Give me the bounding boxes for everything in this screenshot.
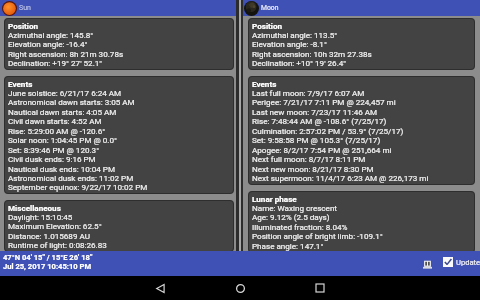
staticText: Azimuthal angle: 145.8° [8, 30, 94, 39]
staticText: Set: 8:39:46 PM @ 120.3° [8, 145, 100, 154]
staticText: Position [8, 21, 39, 30]
staticText: Astronomical dusk ends: 11:02 PM [8, 173, 134, 182]
staticText: Position angle of bright limb: -109.1° [252, 231, 383, 240]
button[interactable]: Miscellaneous [4, 200, 234, 251]
button[interactable]: Update [443, 257, 480, 267]
staticText: Last new moon: 7/23/17 11:46 AM [252, 107, 378, 116]
staticText: Last full moon: 7/9/17 6:07 AM [252, 88, 365, 97]
staticText: Lunar phase [252, 194, 297, 203]
staticText: Next supermoon: 11/4/17 6:23 AM @ 226,17… [252, 173, 429, 182]
button[interactable]: Events [4, 76, 234, 194]
staticText: Illuminated fraction: 8.04% [252, 222, 348, 231]
staticText: Declination: +10° 19' 26.4" [252, 58, 346, 67]
staticText: Set: 9:58:58 PM @ 105.3° (7/25/17) [252, 135, 381, 144]
staticText: Right ascension: 8h 21m 30.78s [8, 49, 124, 58]
button[interactable]: Moon [238, 0, 480, 16]
button[interactable]: Position [4, 18, 234, 70]
staticText: Rise: 7:48:44 AM @ -108.6° (7/25/17) [252, 116, 387, 125]
button[interactable]: Home [200, 276, 280, 300]
staticText: Apogee: 8/2/17 7:54 PM @ 251,664 mi [252, 145, 392, 154]
staticText: Right ascension: 10h 32m 27.38s [252, 49, 372, 58]
staticText: Next new moon: 8/21/17 8:30 PM [252, 164, 374, 173]
staticText: Jul 25, 2017 10:45:10 PM [3, 262, 92, 271]
button[interactable]: Lunar phase [248, 191, 475, 251]
staticText: Solar noon: 1:04:45 PM @ 0.0° [8, 135, 118, 144]
staticText: Declination: +19° 27' 52.1" [8, 58, 102, 67]
button[interactable]: Sun [0, 0, 238, 16]
staticText: Update [456, 258, 480, 267]
staticText: Name: Waxing crescent [252, 203, 338, 212]
staticText: Events [252, 79, 277, 88]
staticText: Nautical dawn starts: 4:05 AM [8, 107, 117, 116]
staticText: Phase angle: 147.1° [252, 241, 324, 250]
staticText: Elevation angle: -16.4° [8, 39, 88, 48]
staticText: Civil dusk ends: 9:16 PM [8, 154, 96, 163]
staticText: Position [252, 21, 283, 30]
staticText: Miscellaneous [8, 203, 61, 212]
staticText: Azimuthal angle: 113.5° [252, 30, 338, 39]
staticText: Culmination: 2:57:02 PM / 53.9° (7/25/17… [252, 126, 404, 135]
staticText: Nautical dusk ends: 10:04 PM [8, 164, 115, 173]
staticText: Next full moon: 8/7/17 8:11 PM [252, 154, 366, 163]
staticText: Daylight: 15:10:45 [8, 212, 73, 221]
staticText: Runtime of light: 0:08:26.83 [8, 240, 107, 249]
staticText: Events [8, 79, 33, 88]
button[interactable]: Position [248, 18, 475, 70]
staticText: Distance: 1.015689 AU [8, 231, 90, 240]
staticText: Moon [261, 4, 279, 12]
button[interactable]: Events [248, 76, 475, 185]
staticText: Elevation angle: -8.1° [252, 39, 327, 48]
staticText: Sun [19, 4, 31, 12]
staticText: Age: 9.12% (2.5 days) [252, 212, 330, 221]
button[interactable]: Recent apps [280, 276, 360, 300]
staticText: Rise: 5:29:00 AM @ -120.6° [8, 126, 106, 135]
staticText: Civil dawn starts: 4:52 AM [8, 116, 102, 125]
staticText: Perigee: 7/21/17 7:11 PM @ 224,457 mi [252, 97, 396, 106]
button[interactable]: Switch input method [421, 258, 433, 270]
staticText: September equinox: 9/22/17 10:02 PM [8, 182, 148, 191]
button[interactable]: Back [120, 276, 200, 300]
staticText: June solstice: 6/21/17 6:24 AM [8, 88, 122, 97]
staticText: Astronomical dawn starts: 3:05 AM [8, 97, 135, 106]
staticText: Maximum Elevation: 62.5° [8, 221, 102, 230]
staticText: 47°N 04' 15" / 15°E 26' 18" [3, 253, 93, 262]
